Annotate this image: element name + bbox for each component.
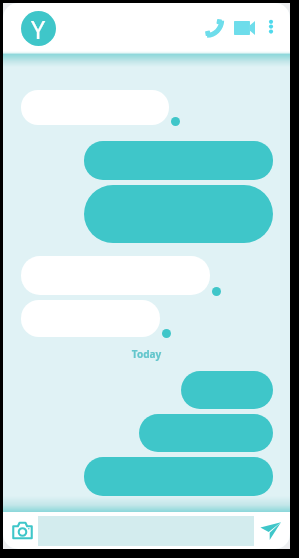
button[interactable]: Y <box>21 11 56 46</box>
button[interactable]: Call <box>200 14 228 42</box>
button[interactable] <box>21 256 210 295</box>
button[interactable]: More options <box>258 14 284 40</box>
button[interactable] <box>84 457 273 496</box>
button[interactable] <box>21 90 169 125</box>
button[interactable] <box>84 141 273 180</box>
button[interactable] <box>21 300 160 337</box>
button[interactable] <box>84 185 273 243</box>
staticText: Today <box>3 347 290 361</box>
button[interactable] <box>139 414 273 452</box>
button[interactable]: Send <box>254 515 286 547</box>
staticText: Y <box>31 12 46 46</box>
button[interactable]: Video call <box>230 14 258 42</box>
button[interactable]: Camera <box>7 515 38 546</box>
button[interactable] <box>181 371 273 409</box>
